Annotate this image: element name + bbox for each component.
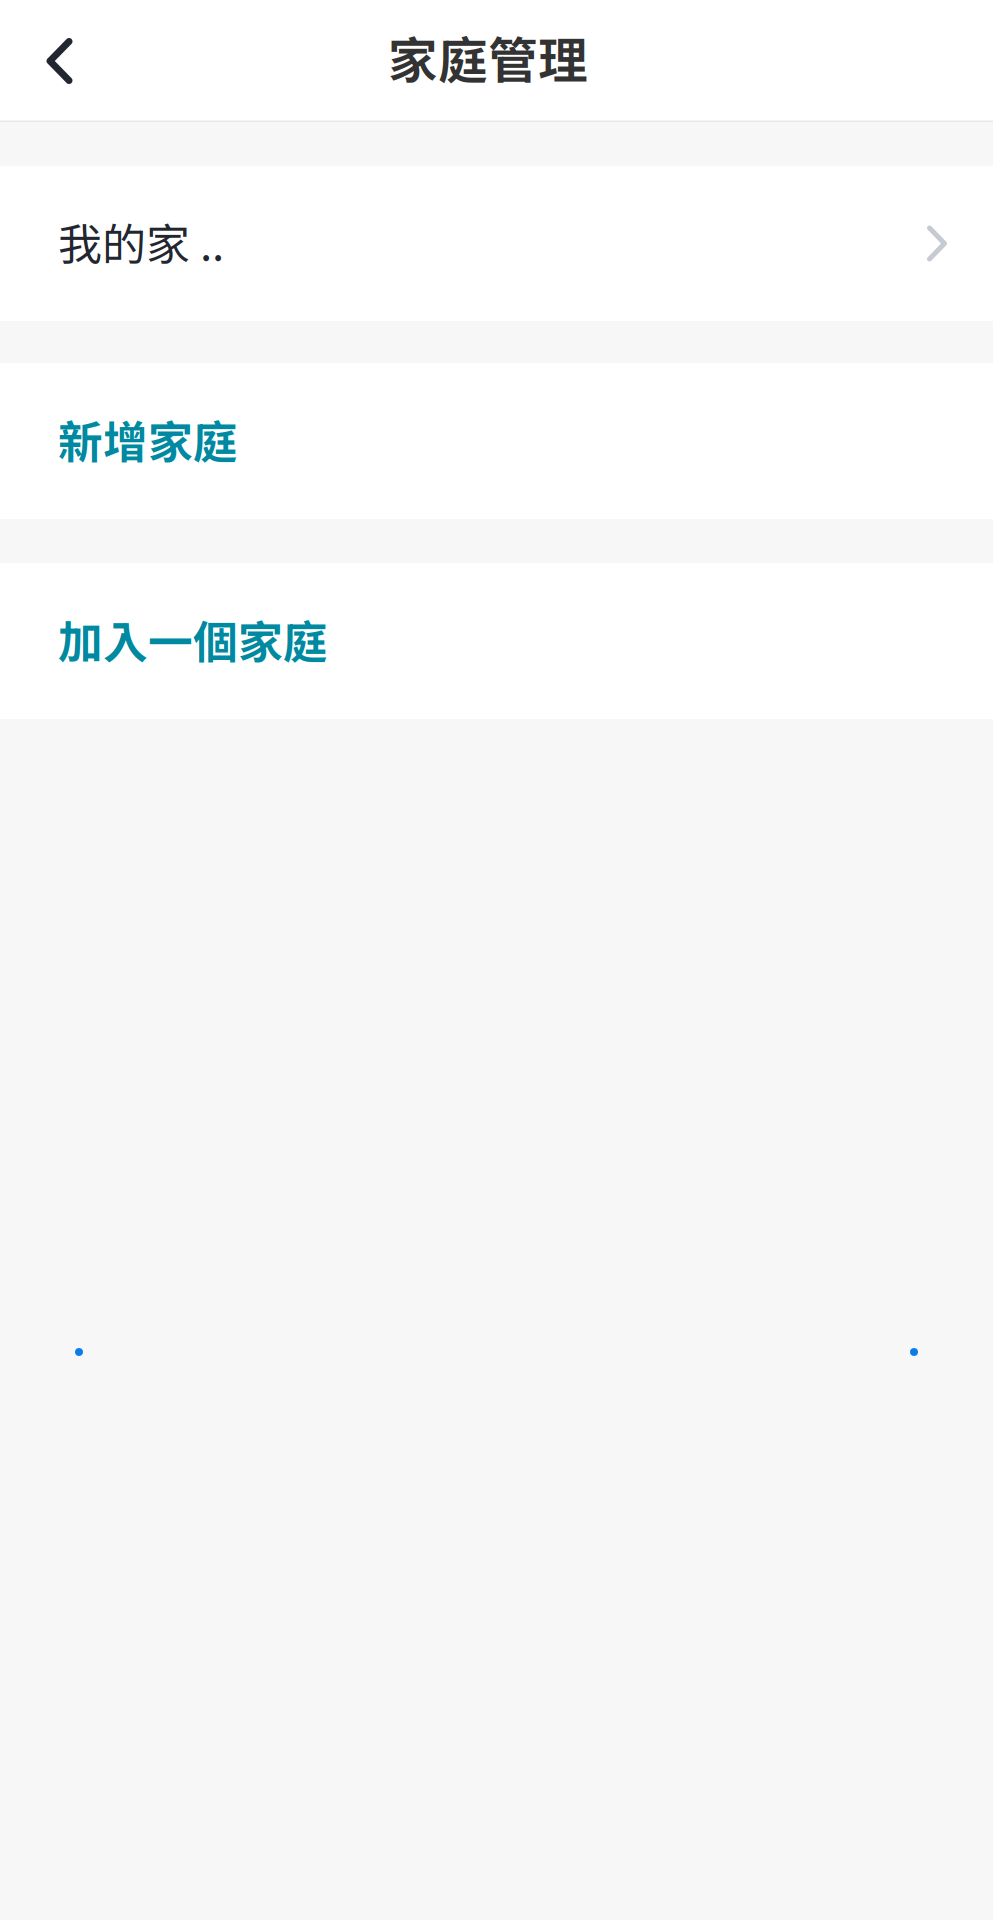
staticText: 新增家庭 bbox=[58, 407, 238, 471]
button[interactable]: 我的家 .. bbox=[0, 166, 993, 321]
staticText: 我的家 .. bbox=[58, 210, 224, 273]
button[interactable]: 加入一個家庭 bbox=[0, 563, 993, 719]
button[interactable]: 返回 bbox=[0, 0, 119, 122]
button[interactable]: 新增家庭 bbox=[0, 363, 993, 519]
staticText: 加入一個家庭 bbox=[58, 607, 328, 671]
staticText: 家庭管理 bbox=[388, 21, 588, 93]
